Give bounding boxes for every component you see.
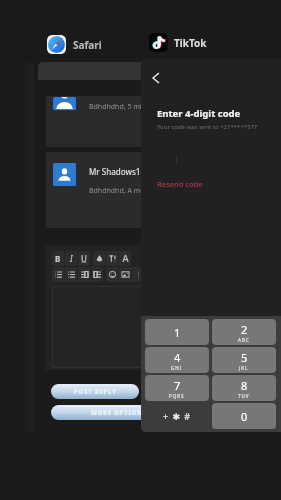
staticText: I xyxy=(70,253,73,264)
button[interactable]: 0 xyxy=(212,403,276,429)
staticText: Bdhdhdhd, A mom xyxy=(89,186,152,196)
button[interactable]: MORE OPTIONS xyxy=(51,405,187,420)
staticText: Enter 4-digit code xyxy=(157,107,241,120)
staticText: TikTok xyxy=(174,36,207,50)
staticText: 8 xyxy=(241,378,248,393)
staticText: PQRS xyxy=(169,393,185,399)
button[interactable] xyxy=(52,267,103,282)
staticText: B xyxy=(55,253,61,264)
staticText: 5 xyxy=(241,350,248,365)
button[interactable]: POST REPLY xyxy=(51,384,139,399)
button[interactable]: 7 xyxy=(145,375,209,401)
staticText: U xyxy=(81,253,87,264)
button[interactable]: 4 xyxy=(145,347,209,373)
button[interactable] xyxy=(106,267,144,282)
button[interactable]: 8 xyxy=(212,375,276,401)
staticText: Safari xyxy=(73,38,102,52)
staticText: TUV xyxy=(238,393,250,399)
staticText: ABC xyxy=(238,337,250,343)
staticText: 7 xyxy=(174,378,181,393)
staticText: 1 xyxy=(174,325,181,340)
button[interactable]: 1 xyxy=(145,319,209,345)
button[interactable] xyxy=(93,251,131,266)
button[interactable]: 5 xyxy=(212,347,276,373)
button[interactable]: Safari xyxy=(47,35,102,54)
button[interactable]: Back xyxy=(147,69,165,87)
button[interactable]: 2 xyxy=(212,319,276,345)
staticText: POST REPLY xyxy=(74,388,117,396)
staticText: 4 xyxy=(174,350,181,365)
staticText: Your code was sent to +27*****577 xyxy=(157,123,258,131)
button[interactable]: Back xyxy=(141,59,281,432)
button[interactable]: TikTok xyxy=(149,33,207,52)
staticText: GHI xyxy=(171,365,183,371)
button[interactable]: Symbols xyxy=(145,403,209,429)
button[interactable]: playe xyxy=(38,62,188,428)
button[interactable] xyxy=(53,287,175,367)
staticText: Bdhdhdhd, 5 minu xyxy=(89,102,151,112)
staticText: Resend code xyxy=(157,179,203,189)
staticText: Mr Shadows1 xyxy=(89,166,141,177)
staticText: + ✱ # xyxy=(163,410,192,422)
staticText: 2 xyxy=(241,322,248,337)
staticText: 0 xyxy=(241,409,248,424)
staticText: JKL xyxy=(239,365,249,371)
staticText: MORE OPTIONS xyxy=(91,409,147,417)
button[interactable]: B xyxy=(52,251,90,266)
